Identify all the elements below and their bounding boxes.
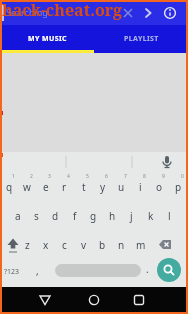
button[interactable]: h <box>103 201 122 230</box>
button[interactable]: s <box>27 201 46 230</box>
button[interactable]: 4 <box>55 172 74 201</box>
staticText: o <box>156 180 163 194</box>
staticText: c <box>62 238 67 252</box>
button[interactable]: m <box>131 230 150 259</box>
staticText: 5 <box>86 173 89 180</box>
staticText: 2 <box>30 173 33 180</box>
button[interactable]: 6 <box>93 172 112 201</box>
staticText: w <box>23 180 31 194</box>
staticText: Searching <box>6 6 48 18</box>
staticText: h <box>109 209 116 223</box>
staticText: z <box>25 238 30 252</box>
staticText: x <box>43 238 49 252</box>
staticText: u <box>118 180 125 194</box>
button[interactable]: 9 <box>150 172 169 201</box>
staticText: r <box>62 180 67 194</box>
staticText: 3 <box>48 173 51 180</box>
staticText: j <box>130 209 133 223</box>
button[interactable] <box>62 287 125 314</box>
staticText: l <box>168 209 171 223</box>
button[interactable]: 2 <box>18 172 36 201</box>
staticText: a <box>15 209 21 223</box>
button[interactable]: MY MUSIC <box>0 25 94 53</box>
button[interactable]: 5 <box>74 172 93 201</box>
button[interactable] <box>150 230 188 259</box>
button[interactable]: j <box>122 201 141 230</box>
staticText: d <box>52 209 59 223</box>
button[interactable]: 8 <box>131 172 150 201</box>
staticText: g <box>90 209 97 223</box>
button[interactable]: v <box>74 230 93 259</box>
button[interactable]: 1 <box>0 172 18 201</box>
staticText: 1 <box>12 173 15 180</box>
button[interactable]: d <box>46 201 65 230</box>
staticText: m <box>136 238 146 252</box>
staticText: s <box>34 209 39 223</box>
button[interactable]: 0 <box>169 172 188 201</box>
button[interactable]: g <box>84 201 103 230</box>
button[interactable]: f <box>65 201 84 230</box>
staticText: n <box>118 238 125 252</box>
button[interactable]: 7 <box>112 172 131 201</box>
staticText: i <box>139 180 142 194</box>
button[interactable]: k <box>141 201 160 230</box>
button[interactable]: b <box>93 230 112 259</box>
button[interactable]: . <box>146 262 149 276</box>
button[interactable]: l <box>160 201 179 230</box>
staticText: k <box>148 209 154 223</box>
staticText: b <box>99 238 106 252</box>
button[interactable]: a <box>9 201 27 230</box>
button[interactable] <box>0 287 62 314</box>
staticText: 7 <box>124 173 127 180</box>
staticText: t <box>82 180 86 194</box>
staticText: v <box>81 238 87 252</box>
staticText: 6 <box>105 173 108 180</box>
button[interactable]: ?123 <box>4 267 20 277</box>
staticText: e <box>43 180 49 194</box>
staticText: 0 <box>181 173 184 180</box>
staticText: hack-cheat.org <box>2 0 123 21</box>
staticText: p <box>175 180 182 194</box>
button[interactable] <box>125 287 188 314</box>
button[interactable] <box>0 230 18 259</box>
staticText: 9 <box>162 173 165 180</box>
button[interactable]: z <box>18 230 36 259</box>
staticText: PLAYLIST <box>124 34 159 44</box>
staticText: 4 <box>67 173 70 180</box>
button[interactable] <box>157 258 181 282</box>
staticText: f <box>73 209 77 223</box>
button[interactable]: n <box>112 230 131 259</box>
button[interactable]: c <box>55 230 74 259</box>
button[interactable]: , <box>36 264 39 278</box>
staticText: MY MUSIC <box>28 34 67 44</box>
staticText: q <box>6 180 13 194</box>
staticText: 8 <box>143 173 146 180</box>
button[interactable]: 3 <box>36 172 55 201</box>
button[interactable]: PLAYLIST <box>94 25 188 53</box>
button[interactable] <box>55 264 141 277</box>
button[interactable]: x <box>36 230 55 259</box>
staticText: y <box>100 180 106 194</box>
button[interactable] <box>0 0 188 25</box>
